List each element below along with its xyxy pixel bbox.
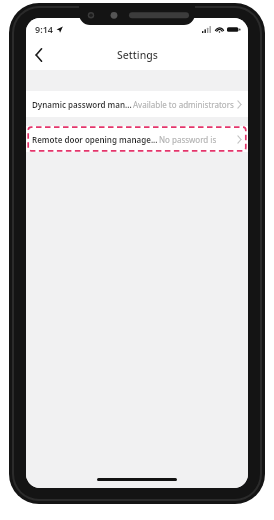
button[interactable]: Remote door opening manage...	[26, 126, 248, 152]
button[interactable]: Back	[26, 42, 52, 68]
staticText: Settings	[117, 48, 158, 62]
staticText: Available to administrators only	[133, 99, 235, 110]
staticText: No password is required	[159, 134, 235, 145]
staticText: 9:14	[35, 23, 53, 35]
button[interactable]: Dynamic password man...	[26, 91, 248, 117]
staticText: Dynamic password man...	[32, 99, 132, 110]
staticText: Remote door opening manage...	[32, 134, 158, 145]
